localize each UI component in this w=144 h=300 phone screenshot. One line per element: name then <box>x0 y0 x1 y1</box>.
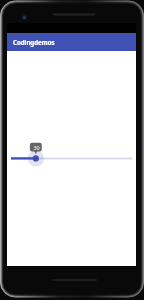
staticText: 30 <box>33 144 40 151</box>
button[interactable]: Codingdemos <box>7 33 136 51</box>
staticText: Codingdemos <box>13 38 55 46</box>
button[interactable]: Slider <box>7 51 136 266</box>
